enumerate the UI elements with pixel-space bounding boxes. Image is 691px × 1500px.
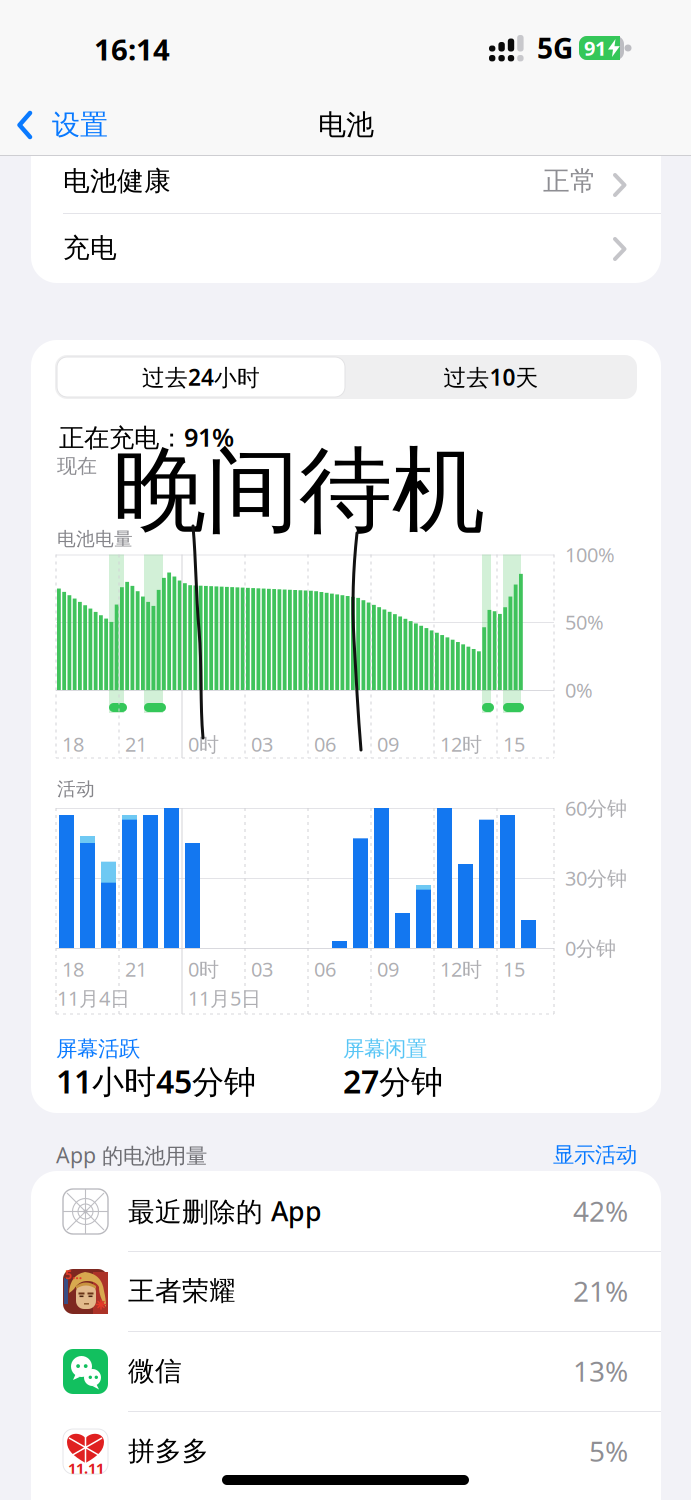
staticText: 正在充电：91% [59, 420, 234, 454]
staticText: 18 [62, 731, 84, 757]
staticText: 5% [589, 1432, 628, 1470]
staticText: 11月5日 [188, 985, 261, 1011]
staticText: 王者荣耀 [128, 1275, 236, 1307]
button[interactable]: 设置 [14, 108, 124, 142]
staticText: 0时 [188, 731, 219, 757]
staticText: 42% [573, 1192, 628, 1230]
staticText: 27分钟 [343, 1060, 443, 1102]
staticText: 03 [251, 956, 273, 982]
staticText: 拼多多 [128, 1435, 209, 1467]
staticText: 09 [377, 956, 399, 982]
staticText: 03 [251, 731, 273, 757]
staticText: App 的电池用量 [56, 1141, 207, 1169]
button[interactable]: 5v5 [31, 1251, 661, 1331]
staticText: 0分钟 [565, 935, 616, 961]
button[interactable]: 过去24小时 [57, 357, 345, 397]
staticText: 活动 [57, 777, 95, 800]
staticText: 显示活动 [553, 1142, 637, 1168]
button[interactable]: 显示活动 [487, 1143, 637, 1167]
button[interactable]: 微信 [31, 1331, 661, 1411]
staticText: 11月4日 [57, 985, 130, 1011]
staticText: 5v5 [65, 1266, 85, 1282]
staticText: 21% [573, 1272, 628, 1310]
staticText: 充电 [63, 232, 117, 264]
staticText: 100% [565, 541, 615, 568]
staticText: 12时 [440, 731, 482, 757]
staticText: 16:14 [94, 29, 170, 68]
staticText: 晚间待机 [113, 434, 485, 548]
staticText: 91 [584, 35, 606, 61]
staticText: 18 [62, 956, 84, 982]
staticText: 屏幕闲置 [343, 1036, 427, 1062]
staticText: 06 [314, 731, 336, 757]
button[interactable]: 11.11 [31, 1411, 661, 1491]
staticText: 设置 [52, 108, 108, 142]
staticText: 13% [573, 1352, 628, 1390]
staticText: 11小时45分钟 [56, 1060, 256, 1102]
staticText: 06 [314, 956, 336, 982]
staticText: 50% [565, 609, 604, 635]
staticText: 过去24小时 [142, 362, 260, 392]
staticText: 12时 [440, 956, 482, 982]
staticText: 电池电量 [57, 527, 133, 550]
staticText: 现在 [57, 454, 97, 478]
staticText: 21 [125, 956, 147, 982]
staticText: 11.11 [68, 1458, 104, 1478]
staticText: 屏幕活跃 [56, 1036, 140, 1062]
button[interactable]: 充电 [31, 214, 661, 283]
staticText: 60分钟 [565, 795, 627, 821]
staticText: 正常 [543, 165, 597, 197]
staticText: 5G [537, 29, 573, 67]
staticText: 最近删除的 App [128, 1193, 322, 1229]
staticText: 微信 [128, 1355, 182, 1387]
staticText: 09 [377, 731, 399, 757]
staticText: 电池 [318, 108, 374, 142]
button[interactable]: 过去10天 [346, 357, 636, 397]
staticText: 21 [125, 731, 147, 757]
button[interactable]: 电池健康 [31, 156, 661, 213]
staticText: 0时 [188, 956, 219, 982]
staticText: 电池健康 [63, 165, 171, 197]
staticText: 0% [565, 677, 593, 703]
button[interactable]: 最近删除的 App [31, 1171, 661, 1251]
staticText: 过去10天 [443, 362, 538, 392]
staticText: 15 [503, 731, 525, 757]
staticText: 30分钟 [565, 865, 627, 891]
staticText: 15 [503, 956, 525, 982]
